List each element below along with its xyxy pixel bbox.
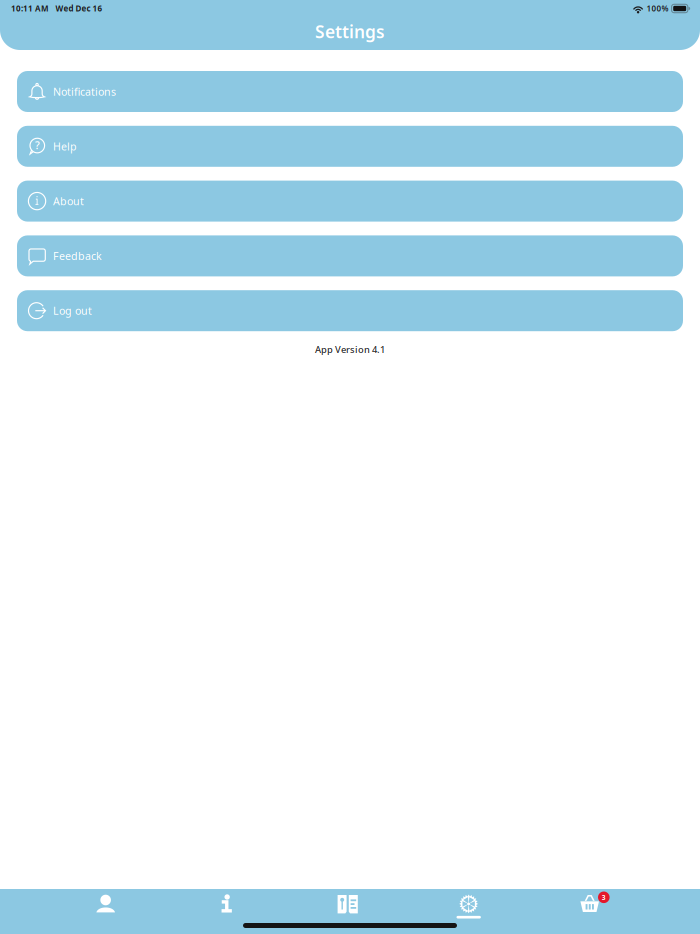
button[interactable]: Feedback	[17, 235, 683, 276]
staticText: Notifications	[53, 84, 116, 99]
button[interactable]: Cart	[529, 889, 650, 934]
button[interactable]: Notifications	[17, 71, 683, 112]
button[interactable]: Profile	[45, 889, 166, 934]
staticText: Settings	[315, 20, 385, 43]
staticText: About	[53, 194, 84, 208]
staticText: Feedback	[53, 249, 102, 263]
button[interactable]: ?	[17, 126, 683, 167]
staticText: 10:11 AM	[11, 3, 49, 14]
button[interactable]: About	[17, 181, 683, 222]
staticText: Help	[53, 139, 77, 153]
button[interactable]: Log out	[17, 290, 683, 331]
staticText: App Version 4.1	[315, 343, 385, 356]
staticText: 100%	[647, 3, 669, 14]
staticText: ?	[35, 138, 40, 152]
staticText: 3	[602, 893, 606, 902]
button[interactable]: Info	[166, 889, 287, 934]
staticText: Wed Dec 16	[55, 3, 102, 14]
staticText: Log out	[53, 304, 92, 318]
button[interactable]: Menu	[287, 889, 408, 934]
button[interactable]: Settings	[408, 889, 529, 934]
